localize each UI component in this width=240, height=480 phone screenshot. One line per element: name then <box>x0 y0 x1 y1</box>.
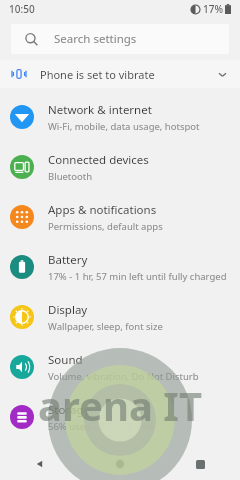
staticText: arena IT <box>38 378 202 432</box>
staticText: Storage <box>48 402 90 418</box>
button[interactable]: Recents <box>160 448 240 480</box>
button[interactable]: Storage <box>0 392 240 442</box>
staticText: Display <box>48 302 88 318</box>
button[interactable]: Connected devices <box>0 142 240 192</box>
button[interactable]: Home <box>80 448 160 480</box>
button[interactable]: Search settings <box>11 24 229 54</box>
button[interactable]: Phone is set to vibrate <box>0 60 240 88</box>
staticText: Permissions, default apps <box>48 220 163 233</box>
staticText: 10:50 <box>9 2 35 16</box>
staticText: Bluetooth <box>48 170 93 183</box>
staticText: 56% used - 3.55 GB free <box>48 420 154 433</box>
staticText: Volume, vibration, Do Not Disturb <box>48 370 199 383</box>
staticText: Apps & notifications <box>48 202 157 218</box>
button[interactable]: Sound <box>0 342 240 392</box>
staticText: Sound <box>48 352 83 368</box>
staticText: Network & internet <box>48 102 152 118</box>
button[interactable]: Network & internet <box>0 92 240 142</box>
staticText: Wallpaper, sleep, font size <box>48 320 163 333</box>
staticText: 17% - 1 hr, 57 min left until fully char… <box>48 270 227 283</box>
button[interactable]: Battery <box>0 242 240 292</box>
staticText: Phone is set to vibrate <box>40 67 155 82</box>
staticText: Battery <box>48 252 88 268</box>
staticText: Connected devices <box>48 152 149 168</box>
button[interactable]: Apps & notifications <box>0 192 240 242</box>
staticText: Wi-Fi, mobile, data usage, hotspot <box>48 120 200 133</box>
staticText: 17% <box>203 2 223 16</box>
staticText: Search settings <box>54 31 137 47</box>
button[interactable]: Back <box>0 448 80 480</box>
button[interactable]: Display <box>0 292 240 342</box>
